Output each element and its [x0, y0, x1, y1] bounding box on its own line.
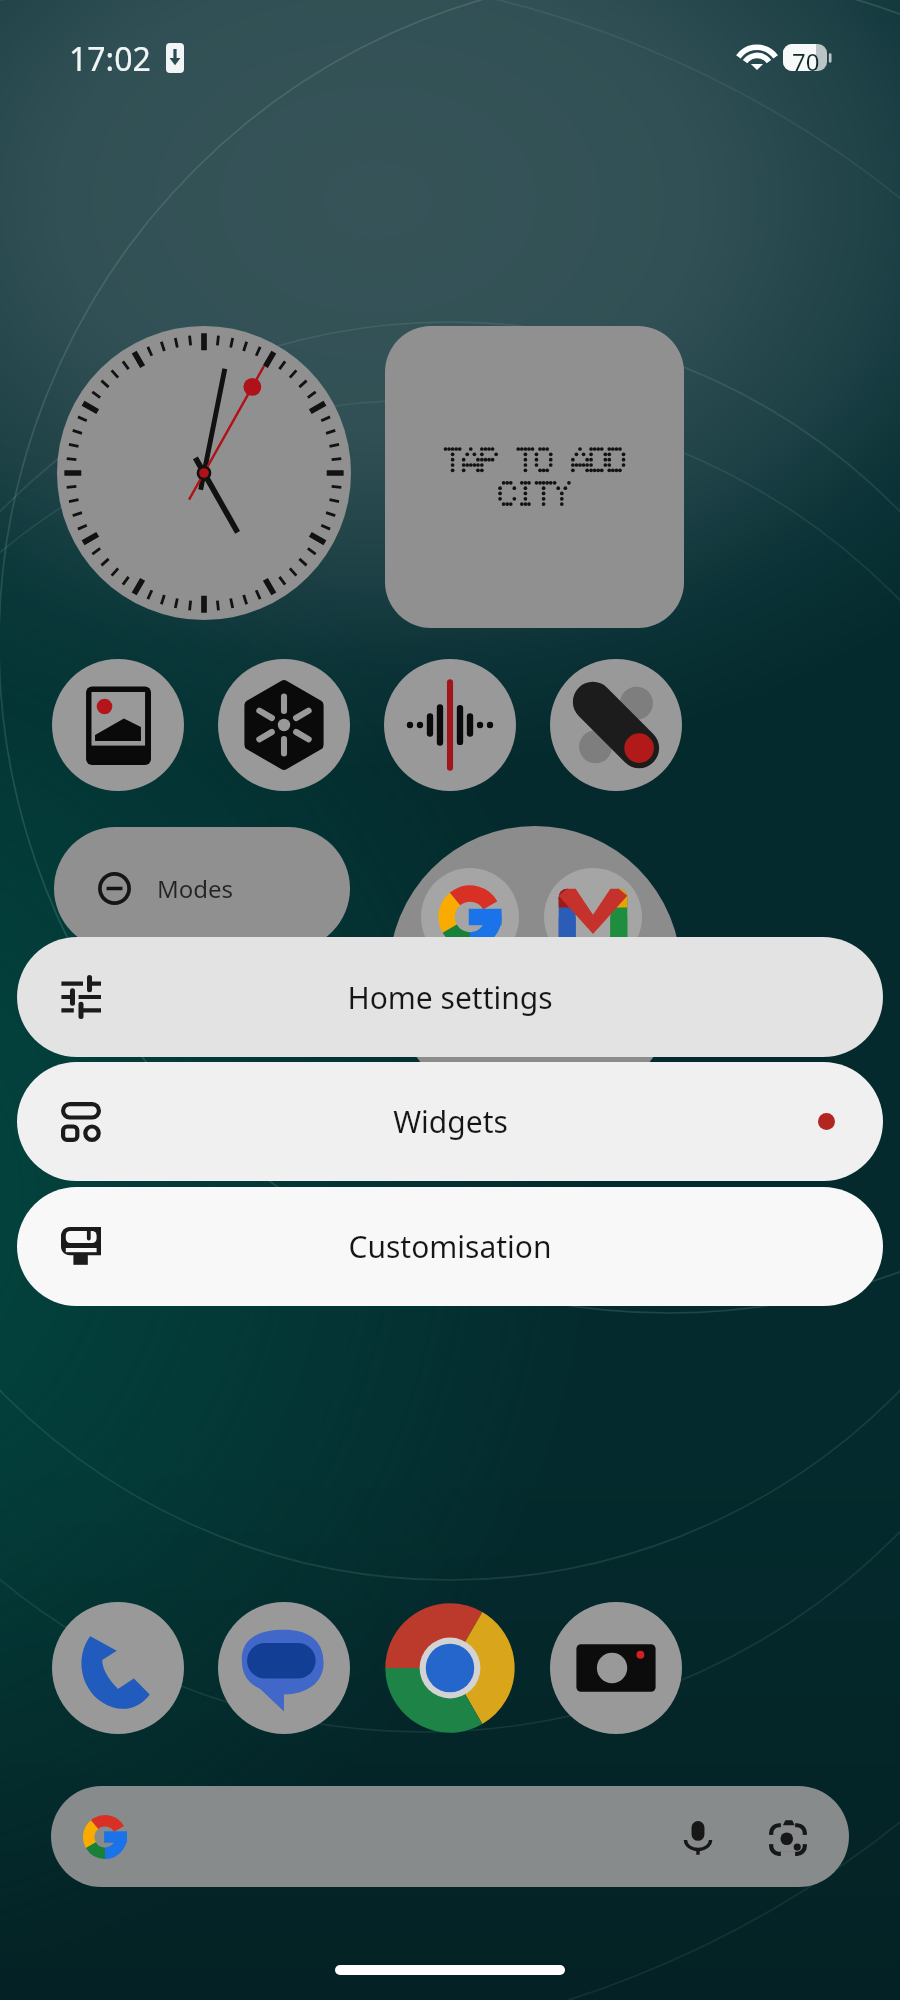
staticText: 17:02 — [69, 37, 151, 81]
button[interactable]: Messages — [218, 1602, 350, 1734]
staticText: Home settings — [347, 977, 553, 1018]
button[interactable]: Customisation — [17, 1187, 883, 1306]
button[interactable] — [51, 1786, 849, 1887]
button[interactable]: Phone — [52, 1602, 184, 1734]
staticText: 70 — [792, 45, 820, 78]
button[interactable]: Recorder — [384, 659, 516, 791]
staticText: Modes — [157, 872, 234, 905]
button[interactable]: Widgets — [17, 1062, 883, 1181]
button[interactable]: Modes — [54, 827, 350, 950]
button[interactable] — [385, 326, 684, 628]
button[interactable]: Camera — [550, 1602, 682, 1734]
button[interactable]: App folder — [389, 826, 681, 1118]
button[interactable]: Google — [421, 868, 519, 966]
staticText: Customisation — [348, 1226, 552, 1267]
button[interactable]: Home settings — [17, 937, 883, 1057]
staticText: Widgets — [393, 1101, 508, 1142]
button[interactable]: Clock app — [550, 659, 682, 791]
button[interactable]: Photos — [52, 659, 184, 791]
button[interactable]: Settings — [218, 659, 350, 791]
button[interactable]: Clock — [57, 326, 351, 620]
button[interactable]: Gmail — [544, 868, 642, 966]
button[interactable]: Chrome — [380, 1598, 520, 1738]
